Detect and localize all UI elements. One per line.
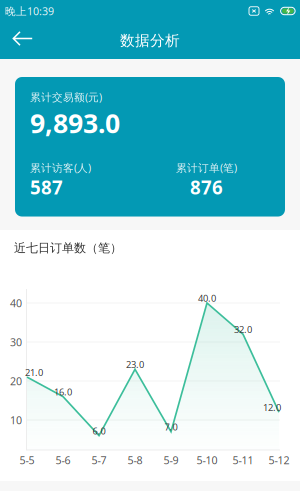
staticText: 6.0 xyxy=(92,425,105,437)
staticText: 5-11 xyxy=(232,453,253,467)
staticText: 23.0 xyxy=(126,358,144,371)
staticText: 5-9 xyxy=(163,453,178,467)
staticText: 20 xyxy=(10,374,22,388)
staticText: 10 xyxy=(10,413,22,427)
staticText: 5-6 xyxy=(55,453,70,467)
staticText: 5-5 xyxy=(19,453,34,467)
staticText: 近七日订单数（笔） xyxy=(14,240,122,255)
staticText: 30 xyxy=(10,335,22,349)
staticText: 16.0 xyxy=(54,386,72,398)
staticText: 40 xyxy=(10,296,22,310)
staticText: 40.0 xyxy=(198,292,216,304)
staticText: 587 xyxy=(30,175,63,199)
staticText: 5-7 xyxy=(91,453,106,467)
staticText: 7.0 xyxy=(164,421,177,433)
staticText: 数据分析 xyxy=(120,31,180,49)
staticText: 5-10 xyxy=(196,453,217,467)
staticText: 累计交易额(元) xyxy=(30,90,102,104)
staticText: 5-8 xyxy=(127,453,142,467)
staticText: 累计访客(人) xyxy=(30,161,91,175)
staticText: 876 xyxy=(190,175,223,199)
staticText: 5-12 xyxy=(268,453,289,467)
staticText: 12.0 xyxy=(263,401,281,414)
staticText: 32.0 xyxy=(234,323,252,336)
staticText: 9,893.0 xyxy=(30,105,120,141)
staticText: 21.0 xyxy=(25,366,43,378)
button[interactable]: Back xyxy=(12,30,33,46)
staticText: 累计订单(笔) xyxy=(176,161,237,175)
staticText: 晚上10:39 xyxy=(5,4,54,18)
